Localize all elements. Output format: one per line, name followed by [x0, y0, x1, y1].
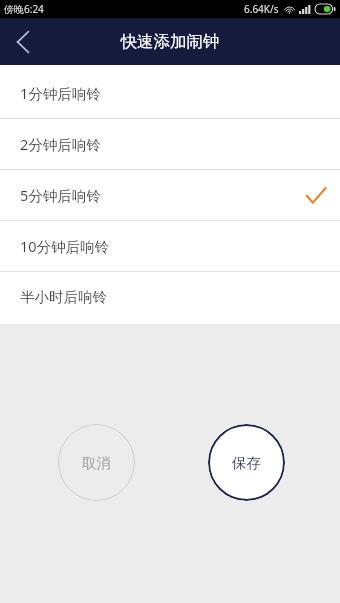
- staticText: 保存: [232, 454, 261, 472]
- staticText: 2分钟后响铃: [20, 134, 101, 154]
- button[interactable]: 10分钟后响铃: [0, 221, 340, 271]
- staticText: 1分钟后响铃: [20, 83, 101, 103]
- button[interactable]: 1分钟后响铃: [0, 68, 340, 118]
- staticText: 6.64K/s: [244, 2, 279, 16]
- button[interactable]: 取消: [58, 424, 135, 501]
- button[interactable]: 5分钟后响铃: [0, 170, 340, 220]
- button[interactable]: 保存: [208, 424, 285, 501]
- button[interactable]: 半小时后响铃: [0, 272, 340, 322]
- staticText: 取消: [82, 454, 111, 472]
- button[interactable]: Back: [0, 18, 46, 65]
- staticText: 5分钟后响铃: [20, 185, 101, 205]
- staticText: 半小时后响铃: [20, 288, 107, 306]
- staticText: 快速添加闹钟: [0, 31, 340, 52]
- button[interactable]: 2分钟后响铃: [0, 119, 340, 169]
- staticText: 10分钟后响铃: [20, 236, 110, 256]
- staticText: 傍晚6:24: [4, 2, 44, 16]
